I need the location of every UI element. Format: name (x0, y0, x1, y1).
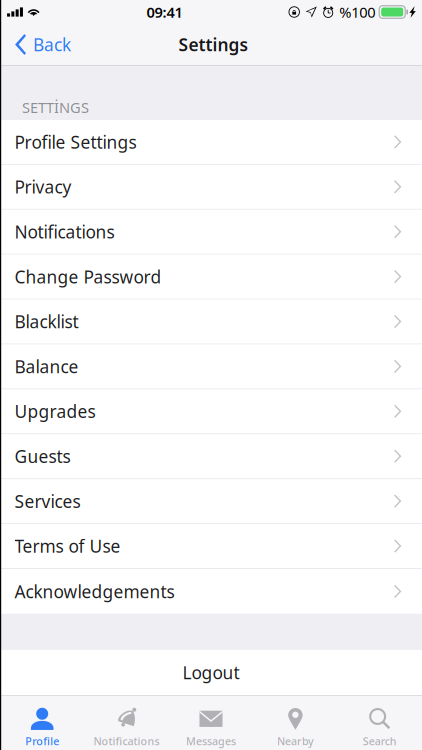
button[interactable]: Search (338, 696, 422, 750)
staticText: Privacy (14, 175, 71, 198)
staticText: Guests (14, 445, 70, 468)
staticText: SETTİNGS (22, 97, 89, 117)
button[interactable]: Messages (169, 696, 253, 750)
staticText: Notifications (94, 734, 160, 748)
button[interactable]: Blacklist (0, 300, 422, 344)
staticText: Logout (182, 661, 239, 684)
staticText: Balance (14, 355, 78, 378)
staticText: Settings (178, 33, 248, 56)
staticText: 09:41 (146, 2, 182, 22)
button[interactable]: Notifications (84, 696, 169, 750)
staticText: Change Password (14, 265, 161, 288)
button[interactable]: Back (0, 24, 83, 65)
staticText: Nearby (277, 734, 314, 748)
button[interactable]: Privacy (0, 165, 422, 210)
button[interactable]: Notifications (0, 210, 422, 255)
staticText: Profile Settings (14, 130, 136, 153)
staticText: %100 (339, 2, 375, 22)
staticText: Messages (186, 734, 236, 748)
staticText: Search (363, 734, 397, 748)
button[interactable]: Change Password (0, 255, 422, 300)
button[interactable]: Upgrades (0, 389, 422, 434)
button[interactable]: Balance (0, 344, 422, 389)
staticText: Upgrades (14, 400, 95, 423)
staticText: Profile (25, 734, 59, 748)
button[interactable]: Services (0, 479, 422, 524)
button[interactable]: Nearby (253, 696, 338, 750)
staticText: Notifications (14, 220, 114, 243)
button[interactable]: Terms of Use (0, 524, 422, 569)
button[interactable]: Acknowledgements (0, 569, 422, 614)
staticText: Back (33, 33, 71, 56)
button[interactable]: Profile (0, 696, 84, 750)
staticText: Acknowledgements (14, 580, 174, 603)
button[interactable]: Profile Settings (0, 120, 422, 165)
staticText: Blacklist (14, 310, 78, 333)
staticText: Terms of Use (14, 534, 120, 557)
staticText: Services (14, 490, 80, 513)
button[interactable]: Logout (0, 650, 422, 695)
button[interactable]: Guests (0, 434, 422, 479)
